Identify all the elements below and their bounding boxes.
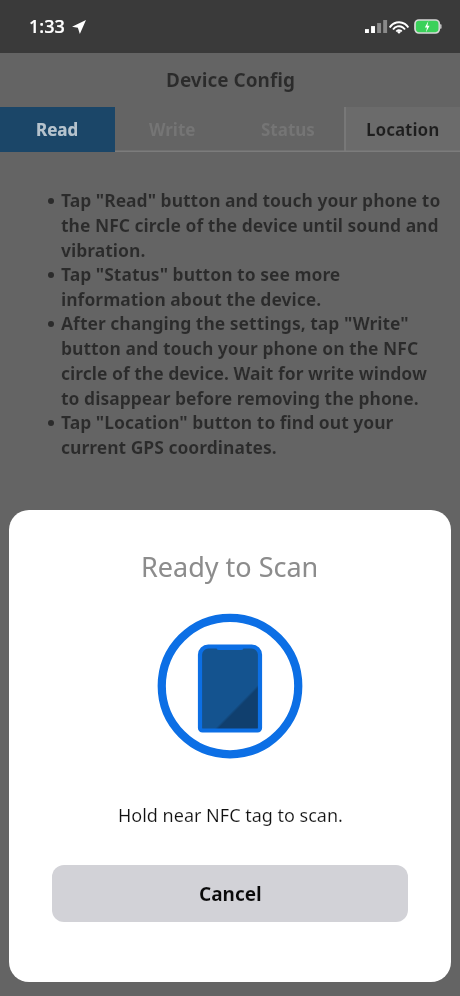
button[interactable]: Location [345, 107, 460, 152]
staticText: Write [149, 118, 196, 141]
staticText: Ready to Scan [141, 548, 319, 585]
button[interactable]: Write [115, 107, 230, 152]
button[interactable]: Status [230, 107, 345, 152]
button[interactable]: Cancel [52, 865, 408, 922]
staticText: Location [366, 118, 440, 141]
staticText: Tap "Location" button to find out your c… [61, 410, 444, 459]
staticText: Hold near NFC tag to scan. [118, 803, 343, 828]
staticText: Read [36, 118, 79, 141]
button[interactable]: Read [0, 107, 115, 152]
staticText: Device Config [166, 67, 295, 93]
other: NFC scanning [155, 611, 305, 761]
staticText: Status [261, 118, 315, 141]
staticText: Tap "Read" button and touch your phone t… [61, 188, 444, 262]
other: Location active [72, 20, 86, 34]
staticText: After changing the settings, tap "Write"… [61, 311, 444, 410]
staticText: 1:33 [29, 14, 65, 39]
staticText: Cancel [199, 881, 262, 907]
staticText: Tap "Status" button to see more informat… [61, 262, 444, 311]
